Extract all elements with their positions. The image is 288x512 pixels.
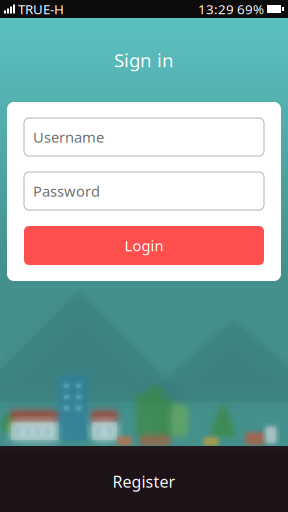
staticText: Sign in [114, 47, 174, 73]
staticText: Password [33, 181, 100, 201]
staticText: 13:29 69% [198, 0, 264, 18]
button[interactable]: Password [24, 172, 264, 210]
staticText: Login [124, 235, 163, 255]
button[interactable]: Login [24, 226, 264, 265]
staticText: Username [33, 127, 104, 147]
staticText: TRUE-H [18, 0, 64, 18]
button[interactable]: Username [24, 118, 264, 156]
button[interactable]: Register [0, 451, 288, 512]
staticText: Register [112, 471, 175, 492]
